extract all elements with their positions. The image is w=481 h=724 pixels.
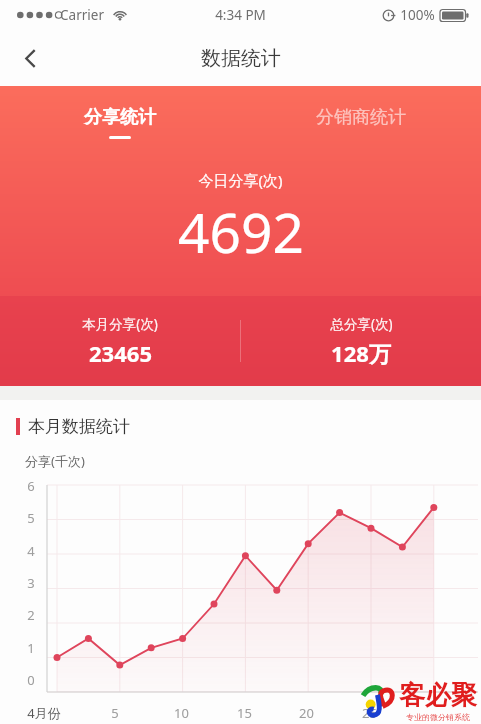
staticText: 2: [27, 606, 35, 624]
staticText: 3: [27, 574, 35, 592]
staticText: 数据统计: [201, 46, 281, 71]
staticText: 0: [27, 671, 35, 689]
button[interactable]: Back: [6, 34, 54, 82]
staticText: 4月份: [27, 704, 61, 722]
staticText: 15: [237, 704, 252, 722]
staticText: 专业的微分销系统: [406, 712, 470, 722]
staticText: 分享(千次): [25, 452, 85, 470]
button[interactable]: 分销商统计: [240, 86, 481, 136]
staticText: 本月分享(次): [82, 315, 158, 333]
staticText: 总分享(次): [330, 315, 393, 333]
staticText: 分销商统计: [316, 106, 406, 129]
staticText: 128万: [331, 338, 391, 368]
staticText: 客必聚: [399, 679, 477, 712]
staticText: 10: [174, 704, 189, 722]
staticText: 5: [111, 704, 119, 722]
staticText: 4: [27, 542, 35, 560]
staticText: 100%: [400, 6, 435, 24]
staticText: 5: [27, 509, 35, 527]
staticText: 分享统计: [84, 106, 156, 129]
staticText: 6: [27, 477, 35, 495]
staticText: Carrier: [60, 6, 104, 24]
staticText: 20: [299, 704, 314, 722]
button[interactable]: 分享统计: [0, 86, 240, 139]
staticText: 本月数据统计: [28, 416, 130, 437]
staticText: 4692: [178, 194, 304, 269]
staticText: 23465: [89, 338, 152, 368]
staticText: 1: [27, 639, 35, 657]
staticText: 4:34 PM: [215, 6, 266, 24]
staticText: 25: [362, 704, 377, 722]
staticText: 今日分享(次): [198, 170, 283, 190]
